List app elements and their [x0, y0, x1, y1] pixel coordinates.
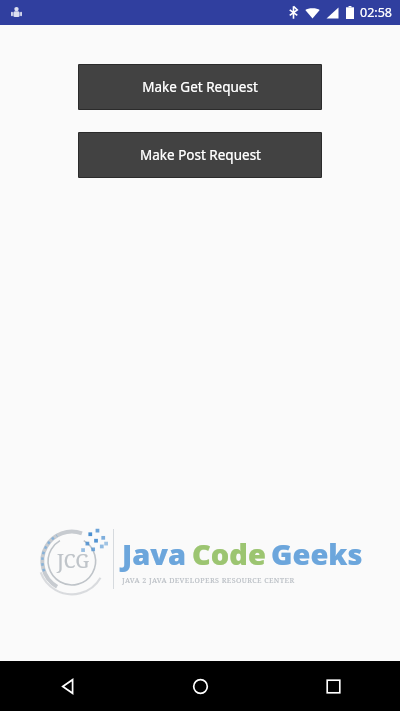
- button[interactable]: Recent apps: [267, 661, 400, 711]
- staticText: Geeks: [271, 534, 363, 573]
- staticText: Make Get Request: [142, 78, 258, 96]
- staticText: 02:58: [360, 4, 392, 21]
- staticText: Java: [122, 534, 187, 573]
- button[interactable]: Make Post Request: [79, 133, 321, 177]
- button[interactable]: Make Get Request: [79, 65, 321, 109]
- staticText: Code: [192, 534, 266, 573]
- button[interactable]: Home: [134, 661, 267, 711]
- staticText: Make Post Request: [140, 146, 261, 164]
- button[interactable]: Back: [0, 661, 134, 711]
- staticText: JCG: [57, 548, 90, 574]
- staticText: JAVA 2 JAVA DEVELOPERS RESOURCE CENTER: [122, 575, 295, 585]
